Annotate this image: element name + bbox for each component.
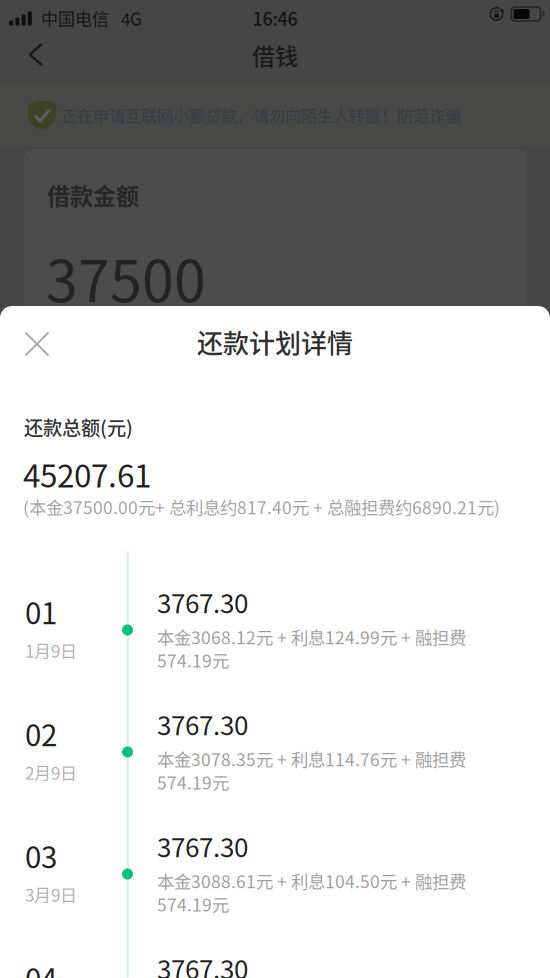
staticText: 16:46 (252, 5, 297, 31)
staticText: 本金3068.12元 + 利息124.99元 + 融担费574.19元 (157, 624, 466, 672)
staticText: 3767.30 (157, 583, 248, 621)
staticText: 1月9日 (25, 638, 77, 663)
staticText: 03 (25, 834, 57, 877)
staticText: 还款总额(元) (24, 413, 133, 441)
staticText: 中国电信 (41, 6, 109, 30)
staticText: 45207.61 (23, 451, 151, 497)
staticText: 4G (121, 6, 142, 30)
staticText: 3767.30 (157, 827, 248, 865)
button[interactable]: Close (13, 320, 61, 368)
staticText: 正在申请互联网小额贷款，请勿向陌生人转账！防范诈骗 (61, 103, 461, 127)
staticText: 还款计划详情 (197, 323, 353, 361)
staticText: 本金3088.61元 + 利息104.50元 + 融担费574.19元 (157, 868, 466, 916)
staticText: 3767.30 (157, 949, 248, 978)
staticText: 借款金额 (47, 178, 139, 211)
staticText: 01 (25, 590, 57, 633)
staticText: 本金3078.35元 + 利息114.76元 + 融担费574.19元 (157, 746, 466, 794)
staticText: 3月9日 (25, 882, 77, 907)
staticText: 借钱 (252, 38, 298, 72)
staticText: 02 (25, 712, 57, 755)
staticText: 2月9日 (25, 760, 77, 785)
staticText: 3767.30 (157, 705, 248, 743)
button[interactable]: Back (0, 31, 72, 79)
staticText: (本金37500.00元+ 总利息约817.40元 + 总融担费约6890.21… (23, 494, 500, 519)
staticText: 37500 (46, 236, 206, 318)
staticText: 04 (25, 956, 57, 978)
